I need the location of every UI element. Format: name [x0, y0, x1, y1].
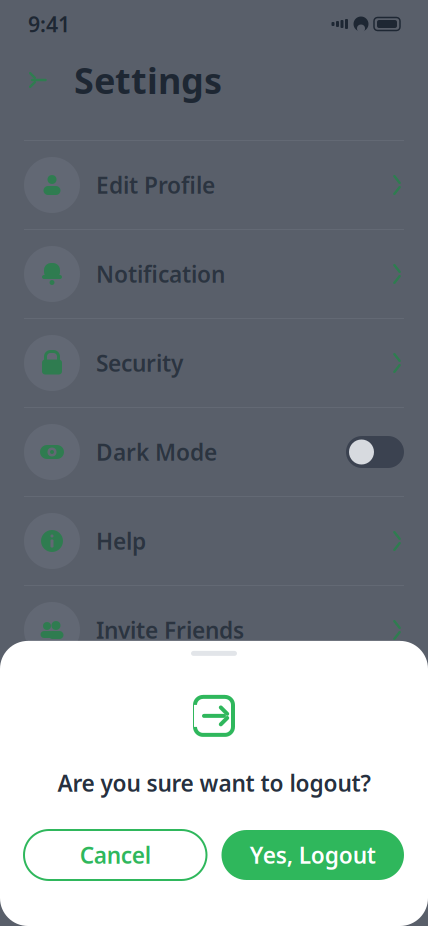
- button[interactable]: Security: [0, 319, 428, 407]
- staticText: Help: [96, 526, 146, 556]
- button[interactable]: Help: [0, 497, 428, 585]
- staticText: Edit Profile: [96, 170, 215, 200]
- button[interactable]: Edit Profile: [0, 141, 428, 229]
- staticText: Dark Mode: [96, 437, 217, 467]
- staticText: Notification: [96, 259, 225, 289]
- staticText: Yes, Logout: [250, 840, 376, 870]
- button[interactable]: Invite Friends: [0, 586, 428, 674]
- button[interactable]: Notification: [0, 230, 428, 318]
- staticText: Settings: [74, 56, 222, 104]
- staticText: Security: [96, 348, 183, 378]
- staticText: Are you sure want to logout?: [57, 768, 370, 798]
- button[interactable]: Back: [24, 65, 54, 95]
- button[interactable]: Dark Mode: [0, 408, 428, 496]
- button[interactable]: Yes, Logout: [221, 830, 404, 880]
- staticText: 9:41: [28, 10, 70, 38]
- staticText: Cancel: [80, 840, 151, 870]
- button[interactable]: Cancel: [24, 830, 206, 880]
- staticText: Invite Friends: [96, 615, 244, 645]
